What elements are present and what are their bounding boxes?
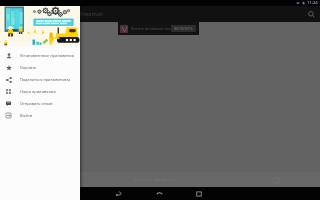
staticText: Оценить — [20, 65, 37, 70]
staticText: Отправить отзыв — [20, 101, 53, 106]
staticText: Freemail — [80, 10, 103, 18]
staticText: ВКЛЮЧИТЬ — [174, 26, 193, 31]
staticText: 11:24 — [307, 0, 318, 6]
button[interactable]: Recents — [193, 188, 204, 199]
button[interactable]: ВКЛЮЧИТЬ — [174, 26, 193, 31]
button[interactable]: Установленные приложения — [0, 49, 80, 61]
staticText: Хотите включить ночной р — [131, 26, 183, 31]
button[interactable]: Back — [113, 188, 124, 199]
staticText: Поделиться приложением — [20, 77, 71, 82]
staticText: Наши приложения — [20, 89, 56, 94]
staticText: Выйти — [20, 113, 33, 118]
button[interactable]: Выйти — [0, 109, 80, 121]
button[interactable]: Поделиться приложением — [0, 73, 80, 85]
button[interactable]: Хотите включить ночной р — [118, 22, 199, 35]
button[interactable]: Home — [154, 188, 165, 199]
button[interactable]: Отправить отзыв — [0, 97, 80, 109]
button[interactable]: Наши приложения — [0, 85, 80, 97]
button[interactable]: Оценить — [0, 61, 80, 73]
staticText: Установленные приложения — [20, 53, 74, 58]
button[interactable]: Search — [305, 8, 317, 20]
